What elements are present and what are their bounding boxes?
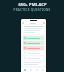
button[interactable] [24, 56, 43, 60]
button[interactable] [24, 26, 43, 33]
button[interactable] [24, 46, 43, 50]
button[interactable] [24, 51, 43, 55]
button[interactable] [24, 36, 43, 40]
button[interactable]: Stats [34, 69, 39, 72]
button[interactable]: Practice [28, 69, 33, 72]
staticText: 650+ PMI-ACP [18, 2, 47, 7]
staticText: PRACTICE QUESTIONS [13, 8, 51, 12]
button[interactable] [21, 21, 46, 24]
button[interactable]: Home [22, 69, 27, 72]
button[interactable]: Profile [40, 69, 45, 72]
button[interactable] [24, 41, 43, 45]
